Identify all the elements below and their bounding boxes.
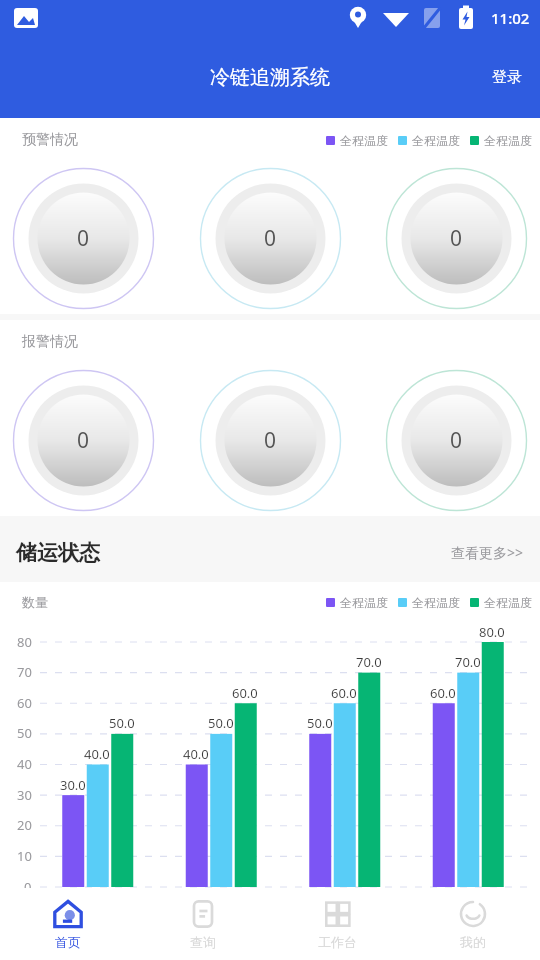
staticText: 0 — [264, 426, 277, 455]
staticText: 10 — [17, 847, 32, 865]
staticText: 0 — [450, 224, 463, 253]
staticText: 预警情况 — [22, 131, 78, 149]
button[interactable]: 0 — [12, 167, 155, 310]
button[interactable]: 0 — [199, 167, 342, 310]
staticText: 40 — [17, 755, 32, 773]
staticText: 冷链追溯系统 — [210, 65, 330, 90]
button[interactable]: 0 — [12, 369, 155, 512]
staticText: 70.0 — [455, 653, 481, 671]
staticText: 11:02 — [491, 8, 530, 28]
staticText: 全程温度 — [412, 595, 460, 610]
staticText: 报警情况 — [22, 333, 78, 351]
staticText: 70 — [17, 663, 32, 681]
button[interactable]: 0 — [385, 167, 528, 310]
button[interactable]: 查询 — [135, 888, 270, 960]
staticText: 我的 — [460, 934, 486, 950]
staticText: 0 — [24, 878, 32, 896]
staticText: 登录 — [492, 68, 522, 87]
staticText: 0 — [77, 224, 90, 253]
staticText: 全程温度 — [340, 595, 388, 610]
staticText: 50 — [17, 724, 32, 742]
staticText: 40.0 — [84, 745, 110, 763]
staticText: 查询 — [190, 934, 216, 950]
staticText: 50.0 — [307, 714, 333, 732]
staticText: 50.0 — [109, 714, 135, 732]
staticText: 0 — [264, 224, 277, 253]
staticText: 全程温度 — [484, 595, 532, 610]
button[interactable]: 0 — [385, 369, 528, 512]
staticText: 全程温度 — [484, 133, 532, 148]
staticText: 0 — [77, 426, 90, 455]
button[interactable]: 我的 — [405, 888, 540, 960]
button[interactable]: 登录 — [474, 54, 540, 101]
staticText: 全程温度 — [412, 133, 460, 148]
staticText: 全程温度 — [340, 133, 388, 148]
staticText: 60.0 — [430, 684, 456, 702]
staticText: 储运状态 — [16, 540, 100, 566]
staticText: 70.0 — [356, 653, 382, 671]
staticText: 0 — [450, 426, 463, 455]
staticText: 查看更多>> — [451, 543, 524, 562]
staticText: 20 — [17, 816, 32, 834]
button[interactable]: 查看更多>> — [435, 531, 540, 574]
button[interactable]: 工作台 — [270, 888, 405, 960]
button[interactable]: 0 — [199, 369, 342, 512]
staticText: 60.0 — [331, 684, 357, 702]
staticText: 30 — [17, 786, 32, 804]
staticText: 60.0 — [232, 684, 258, 702]
staticText: 工作台 — [318, 934, 357, 950]
staticText: 数量 — [22, 594, 48, 610]
staticText: 40.0 — [183, 745, 209, 763]
staticText: 80.0 — [479, 623, 505, 641]
staticText: 60 — [17, 694, 32, 712]
button[interactable]: 首页 — [0, 888, 135, 960]
staticText: 30.0 — [60, 776, 86, 794]
staticText: 80 — [17, 633, 32, 651]
staticText: 首页 — [55, 934, 81, 950]
staticText: 50.0 — [208, 714, 234, 732]
